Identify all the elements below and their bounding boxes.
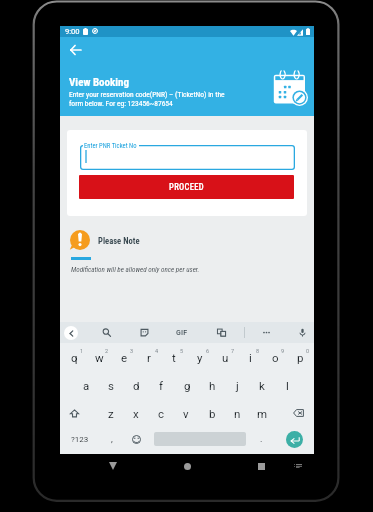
button[interactable]: Home: [179, 458, 195, 474]
button[interactable]: Recents: [253, 458, 269, 474]
staticText: g: [184, 379, 191, 392]
button[interactable]: h: [201, 373, 223, 397]
button[interactable]: q: [63, 345, 85, 369]
button[interactable]: Shift: [66, 405, 82, 421]
staticText: r: [147, 351, 151, 364]
staticText: 4: [155, 348, 159, 354]
staticText: GIF: [176, 329, 188, 337]
staticText: e: [121, 351, 128, 364]
button[interactable]: GIF: [173, 325, 191, 340]
button[interactable]: n: [226, 401, 248, 425]
staticText: u: [222, 351, 229, 364]
staticText: 8: [256, 348, 260, 354]
staticText: j: [236, 379, 239, 392]
button[interactable]: Stickers: [137, 325, 151, 339]
button[interactable]: d: [125, 373, 147, 397]
button[interactable]: e: [113, 345, 135, 369]
button[interactable]: b: [201, 401, 223, 425]
button[interactable]: c: [150, 401, 172, 425]
button[interactable]: Switch keyboard: [290, 458, 306, 474]
button[interactable]: l: [276, 373, 298, 397]
staticText: s: [108, 379, 114, 392]
button[interactable]: Enter: [286, 431, 303, 448]
button[interactable]: s: [100, 373, 122, 397]
staticText: b: [209, 407, 216, 420]
staticText: 2: [105, 348, 109, 354]
button[interactable]: k: [251, 373, 273, 397]
staticText: k: [259, 379, 265, 392]
button[interactable]: Emoji: [129, 432, 143, 446]
staticText: y: [197, 351, 203, 364]
staticText: Enter your reservation code(PNR) – (Tick…: [69, 90, 226, 108]
staticText: f: [159, 379, 163, 392]
staticText: t: [172, 351, 176, 364]
staticText: Enter PNR Ticket No: [84, 142, 137, 150]
staticText: 3: [130, 348, 134, 354]
button[interactable]: More options: [259, 325, 273, 339]
staticText: 9: [281, 348, 285, 354]
button[interactable]: m: [251, 401, 273, 425]
staticText: h: [209, 379, 216, 392]
staticText: View Booking: [69, 76, 129, 89]
staticText: o: [272, 351, 279, 364]
staticText: a: [83, 379, 90, 392]
button[interactable]: .: [255, 432, 267, 447]
staticText: c: [158, 407, 165, 420]
button[interactable]: y: [189, 345, 211, 369]
staticText: q: [71, 351, 78, 364]
staticText: ,: [111, 434, 113, 445]
staticText: PROCEED: [169, 182, 205, 192]
button[interactable]: PROCEED: [79, 175, 294, 199]
staticText: .: [260, 434, 263, 445]
button[interactable]: t: [163, 345, 185, 369]
staticText: w: [95, 351, 104, 364]
button[interactable]: r: [138, 345, 160, 369]
button[interactable]: x: [125, 401, 147, 425]
button[interactable]: z: [100, 401, 122, 425]
button[interactable]: Search: [99, 325, 113, 339]
staticText: Modification will be allowed only once p…: [71, 265, 200, 273]
button[interactable]: Backspace: [290, 405, 306, 421]
button[interactable]: Translate: [214, 325, 228, 339]
staticText: d: [133, 379, 140, 392]
button[interactable]: g: [176, 373, 198, 397]
staticText: p: [297, 351, 304, 364]
staticText: i: [249, 351, 252, 364]
button[interactable]: Voice input: [295, 325, 309, 339]
staticText: 9:00: [65, 27, 80, 36]
button[interactable]: Back: [105, 458, 121, 474]
staticText: 6: [206, 348, 210, 354]
button[interactable]: f: [150, 373, 172, 397]
button[interactable]: i: [239, 345, 261, 369]
staticText: l: [286, 379, 289, 392]
staticText: Please Note: [98, 236, 140, 246]
staticText: n: [234, 407, 241, 420]
staticText: 0: [306, 348, 310, 354]
button[interactable]: [80, 145, 295, 170]
button[interactable]: a: [75, 373, 97, 397]
button[interactable]: v: [175, 401, 197, 425]
button[interactable]: u: [214, 345, 236, 369]
button[interactable]: p: [289, 345, 311, 369]
staticText: 1: [80, 348, 84, 354]
staticText: 7: [231, 348, 235, 354]
staticText: ?123: [71, 435, 89, 444]
staticText: z: [108, 407, 114, 420]
staticText: x: [133, 407, 139, 420]
button[interactable]: j: [226, 373, 248, 397]
button[interactable]: w: [88, 345, 110, 369]
button[interactable]: ?123: [68, 432, 92, 447]
staticText: 5: [180, 348, 184, 354]
button[interactable]: ,: [106, 432, 118, 447]
button[interactable]: o: [264, 345, 286, 369]
staticText: m: [257, 407, 268, 420]
button[interactable]: Collapse toolbar: [64, 326, 78, 340]
staticText: v: [183, 407, 189, 420]
button[interactable]: Back: [65, 40, 85, 60]
